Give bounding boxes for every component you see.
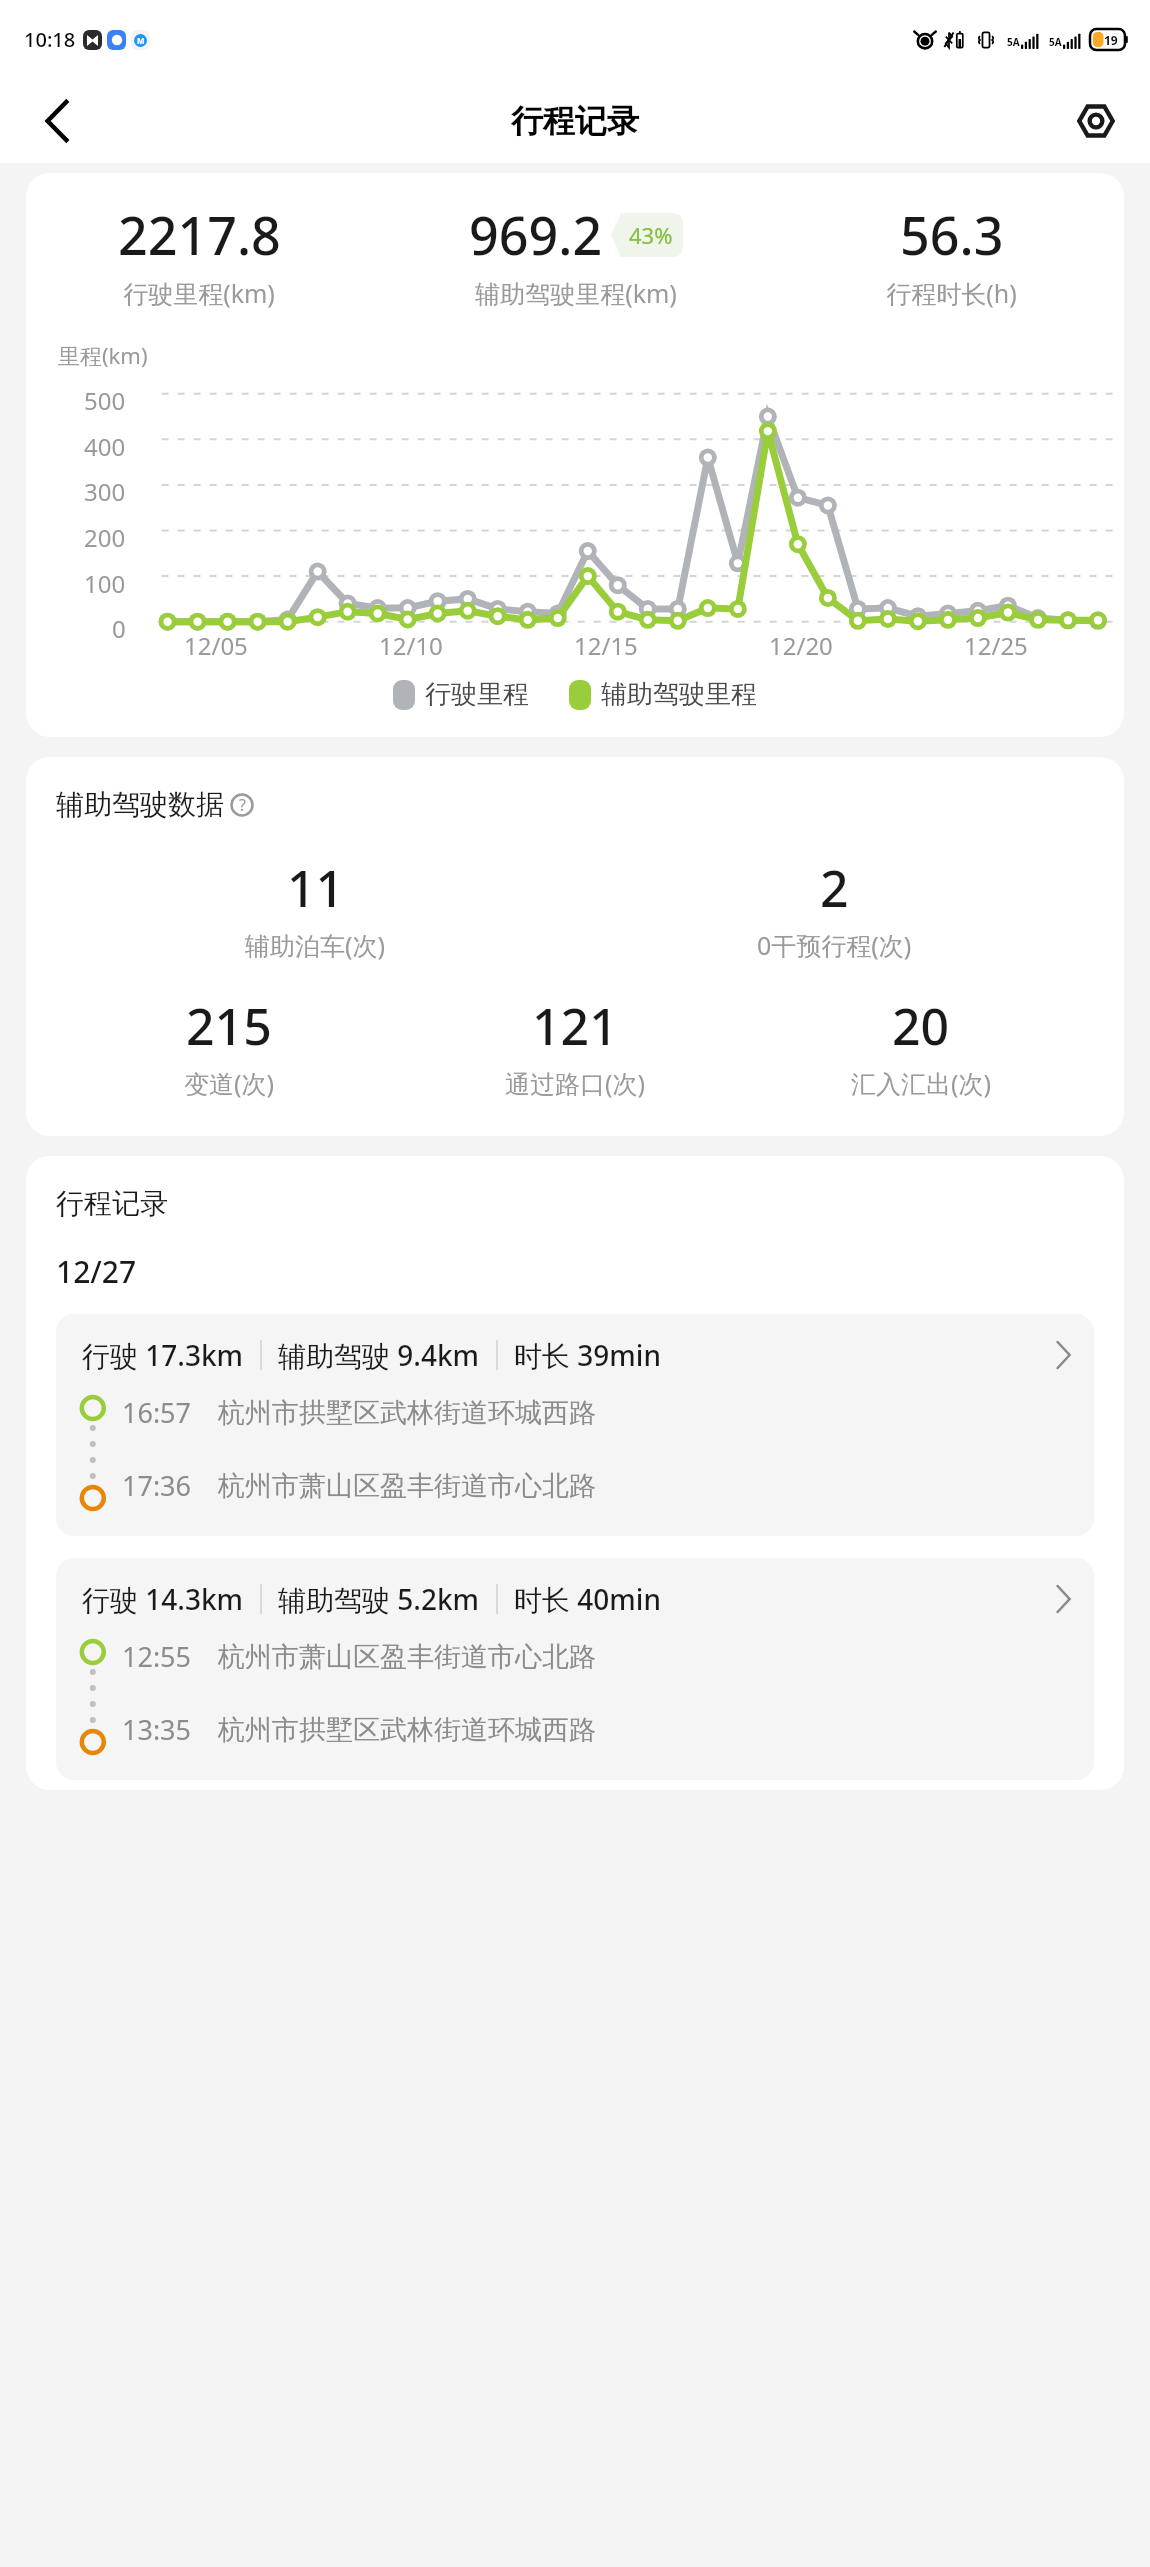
staticText: 16:57 [122, 1394, 192, 1431]
staticText: 行驶 14.3km [82, 1580, 244, 1618]
staticText: 12:55 [122, 1638, 192, 1675]
staticText: 12/15 [574, 629, 638, 662]
staticText: 时长 40min [514, 1580, 661, 1618]
staticText: 13:35 [122, 1711, 192, 1748]
staticText: 200 [84, 521, 126, 551]
staticText: 里程(km) [58, 340, 148, 370]
staticText: 0干预行程(次) [757, 928, 912, 962]
staticText: 20 [892, 992, 950, 1060]
staticText: 辅助驾驶里程 [601, 678, 757, 711]
staticText: 杭州市萧山区盈丰街道市心北路 [218, 1640, 596, 1674]
staticText: 215 [186, 992, 272, 1060]
staticText: 行程时长(h) [886, 276, 1017, 310]
staticText: 杭州市拱墅区武林街道环城西路 [218, 1396, 596, 1430]
staticText: 行驶里程(km) [123, 276, 275, 310]
staticText: 2217.8 [118, 199, 281, 270]
staticText: 辅助驾驶 9.4km [278, 1336, 480, 1374]
button[interactable]: Back [30, 93, 86, 149]
staticText: 12/20 [769, 629, 833, 662]
staticText: 100 [84, 567, 126, 597]
staticText: 12/27 [56, 1251, 137, 1292]
staticText: 辅助驾驶里程(km) [475, 276, 677, 310]
staticText: 43% [629, 220, 673, 250]
staticText: 5A [1049, 35, 1062, 49]
staticText: 变道(次) [184, 1066, 275, 1100]
staticText: 121 [532, 992, 618, 1060]
staticText: 56.3 [900, 199, 1004, 270]
staticText: 5A [1007, 35, 1020, 49]
staticText: 通过路口(次) [505, 1066, 646, 1100]
staticText: 300 [84, 475, 126, 505]
button[interactable]: Help [229, 792, 255, 818]
staticText: 0 [112, 612, 126, 642]
staticText: 400 [84, 430, 126, 460]
button[interactable]: Settings [1068, 93, 1124, 149]
staticText: 12/10 [379, 629, 443, 662]
staticText: 12/25 [964, 629, 1028, 662]
staticText: 19 [1104, 32, 1118, 48]
staticText: 12/05 [184, 629, 248, 662]
button[interactable]: 行驶 14.3km [56, 1558, 1094, 1780]
staticText: 500 [84, 384, 126, 414]
staticText: 行驶 17.3km [82, 1336, 244, 1374]
staticText: 17:36 [122, 1467, 192, 1504]
staticText: 行程记录 [56, 1186, 168, 1221]
staticText: 969.2 [469, 199, 603, 270]
staticText: 杭州市拱墅区武林街道环城西路 [218, 1713, 596, 1747]
staticText: 辅助驾驶数据 [56, 787, 224, 822]
staticText: 10:18 [24, 26, 76, 53]
staticText: 行驶里程 [425, 678, 529, 711]
staticText: 11 [287, 854, 345, 922]
staticText: 辅助泊车(次) [245, 928, 386, 962]
staticText: ? [239, 794, 246, 816]
staticText: 时长 39min [514, 1336, 661, 1374]
staticText: 行程记录 [511, 101, 639, 141]
staticText: 汇入汇出(次) [851, 1066, 992, 1100]
staticText: 2 [820, 854, 849, 922]
staticText: 辅助驾驶 5.2km [278, 1580, 480, 1618]
staticText: 杭州市萧山区盈丰街道市心北路 [218, 1469, 596, 1503]
button[interactable]: 行驶 17.3km [56, 1314, 1094, 1536]
staticText: M [137, 35, 145, 46]
